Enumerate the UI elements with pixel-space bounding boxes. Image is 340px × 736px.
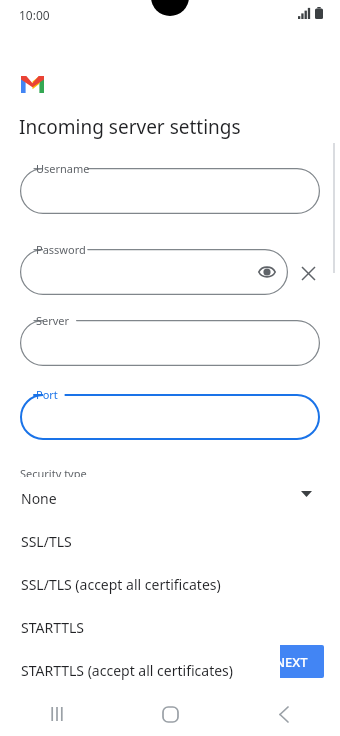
staticText: NEXT <box>275 653 308 671</box>
staticText: Port <box>36 387 58 402</box>
button[interactable]: Server <box>20 320 320 366</box>
staticText: Password <box>36 242 86 257</box>
button[interactable]: STARTTLS <box>13 606 280 649</box>
staticText: 10:00 <box>19 7 50 23</box>
staticText: STARTTLS <box>21 618 85 637</box>
staticText: SSL/TLS <box>21 532 72 551</box>
button[interactable]: SSL/TLS (accept all certificates) <box>13 563 280 606</box>
button[interactable]: Password <box>20 249 288 295</box>
staticText: Server <box>36 313 70 328</box>
button[interactable]: SSL/TLS <box>13 520 280 563</box>
button[interactable]: Recents <box>0 692 114 736</box>
staticText: Username <box>36 161 90 176</box>
staticText: STARTTLS (accept all certificates) <box>21 661 233 680</box>
button[interactable]: Home <box>114 692 227 736</box>
staticText: Security type <box>20 466 87 481</box>
button[interactable]: None <box>13 477 280 520</box>
button[interactable]: Port <box>20 394 320 440</box>
button[interactable]: Expand security type <box>294 482 318 506</box>
button[interactable]: Show password <box>254 259 280 285</box>
button[interactable]: Clear password <box>296 261 320 285</box>
staticText: SSL/TLS (accept all certificates) <box>21 575 221 594</box>
staticText: Incoming server settings <box>19 114 241 140</box>
button[interactable]: NEXT <box>258 645 324 678</box>
button[interactable]: STARTTLS (accept all certificates) <box>13 649 280 692</box>
button[interactable]: Username <box>20 168 320 214</box>
staticText: None <box>21 489 57 508</box>
button[interactable]: Back <box>227 692 340 736</box>
